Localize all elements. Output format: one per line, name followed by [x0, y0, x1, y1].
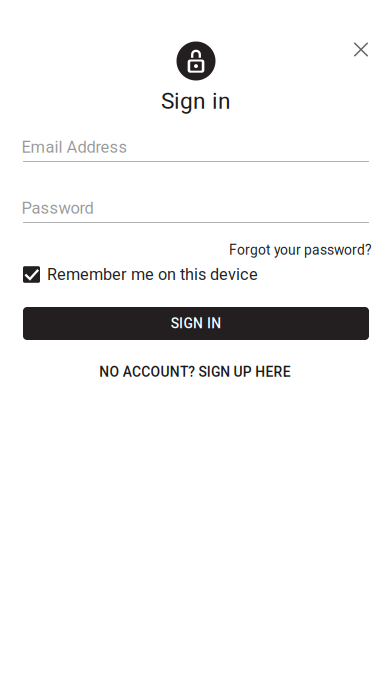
staticText: Email Address	[21, 137, 127, 157]
button[interactable]: Forgot your password?	[23, 239, 372, 261]
staticText: Sign in	[161, 88, 231, 114]
staticText: NO ACCOUNT? SIGN UP HERE	[99, 364, 291, 380]
staticText: SIGN IN	[171, 315, 221, 332]
staticText: Password	[21, 198, 93, 218]
staticText: Forgot your password?	[229, 242, 372, 258]
staticText: Remember me on this device	[47, 265, 258, 284]
button[interactable]: Close	[339, 27, 383, 71]
button[interactable]: NO ACCOUNT? SIGN UP HERE	[22, 361, 368, 383]
button[interactable]: SIGN IN	[23, 307, 369, 340]
button[interactable]: Remember me on this device	[23, 261, 369, 287]
